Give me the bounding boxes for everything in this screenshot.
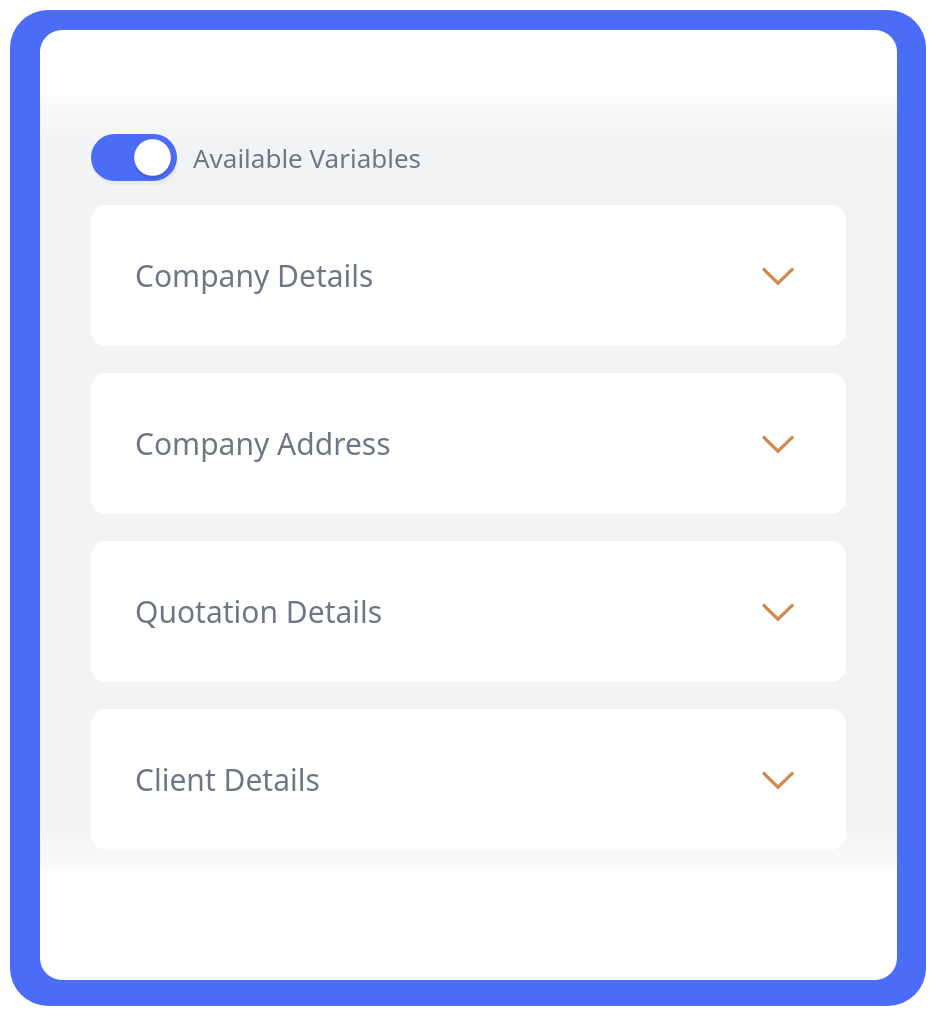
button[interactable]: Client Details: [91, 709, 846, 850]
staticText: Company Details: [135, 255, 757, 296]
staticText: Company Address: [135, 423, 757, 464]
button[interactable]: Available Variables toggle, on: [91, 134, 177, 181]
staticText: Available Variables: [193, 140, 422, 175]
button[interactable]: Company Details: [91, 205, 846, 346]
button[interactable]: Company Address: [91, 373, 846, 514]
other: Expand section: [757, 423, 799, 465]
other: Expand section: [757, 759, 799, 801]
staticText: Quotation Details: [135, 591, 757, 632]
other: Expand section: [757, 591, 799, 633]
button[interactable]: Available Variables toggle, on: [91, 130, 422, 184]
button[interactable]: Quotation Details: [91, 541, 846, 682]
staticText: Client Details: [135, 759, 757, 800]
other: Expand section: [757, 255, 799, 297]
